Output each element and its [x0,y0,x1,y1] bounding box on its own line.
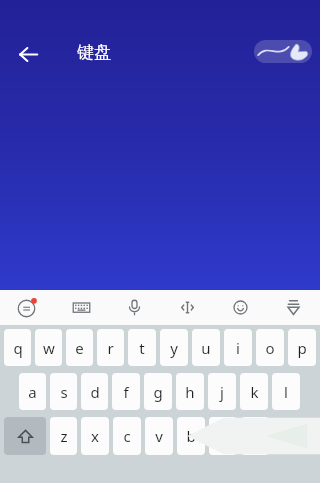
button[interactable]: q [4,329,31,366]
button[interactable]: Voice input [108,290,161,325]
staticText: x [91,426,99,446]
staticText: 键盘 [77,42,111,63]
button[interactable]: f [112,373,140,410]
button[interactable]: h [176,373,204,410]
button[interactable]: Emoji [214,290,267,325]
staticText: v [155,426,163,446]
staticText: k [250,382,259,402]
button[interactable]: c [113,417,141,455]
button[interactable]: s [50,373,77,410]
staticText: z [60,426,68,446]
staticText: t [139,338,145,358]
staticText: g [153,382,163,402]
staticText: q [13,338,23,358]
button[interactable]: j [208,373,236,410]
button[interactable]: t [128,329,156,366]
button[interactable]: v [145,417,173,455]
staticText: e [75,338,84,358]
staticText: j [220,382,224,402]
button[interactable]: b [177,417,205,455]
button[interactable]: Swipe input toggle [254,40,312,63]
staticText: f [123,382,129,402]
button[interactable]: p [288,329,316,366]
staticText: r [107,338,114,358]
staticText: s [60,382,68,402]
button[interactable]: x [81,417,109,455]
button[interactable]: e [66,329,93,366]
staticText: w [43,338,55,358]
staticText: d [90,382,100,402]
staticText: y [170,338,178,358]
button[interactable]: Keyboard layout [54,290,108,325]
staticText: c [123,426,131,446]
button[interactable]: n [209,417,237,455]
button[interactable]: g [144,373,172,410]
button[interactable]: Shift [4,417,46,455]
button[interactable]: Sogou input panel [0,290,54,325]
staticText: b [186,426,196,446]
button[interactable]: Back [10,36,46,72]
button[interactable]: o [256,329,284,366]
button[interactable]: l [272,373,300,410]
staticText: h [185,382,195,402]
button[interactable]: w [35,329,62,366]
button[interactable]: k [240,373,268,410]
button[interactable]: i [224,329,252,366]
button[interactable]: z [50,417,77,455]
button[interactable]: a [19,373,46,410]
button[interactable]: y [160,329,188,366]
button[interactable]: u [192,329,220,366]
button[interactable]: Hide keyboard [267,290,320,325]
staticText: a [28,382,37,402]
staticText: p [297,338,307,358]
staticText: o [265,338,275,358]
staticText: i [236,338,240,358]
staticText: l [284,382,288,402]
button[interactable]: d [81,373,108,410]
button[interactable]: r [97,329,124,366]
button[interactable]: Move cursor [161,290,214,325]
staticText: u [201,338,211,358]
